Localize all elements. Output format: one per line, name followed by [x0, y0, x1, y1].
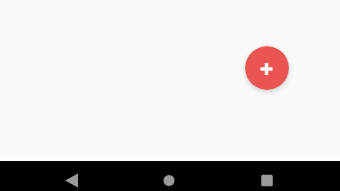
- button[interactable]: [153, 161, 185, 191]
- button[interactable]: [251, 161, 283, 191]
- button[interactable]: [245, 46, 289, 90]
- button[interactable]: [55, 161, 87, 191]
